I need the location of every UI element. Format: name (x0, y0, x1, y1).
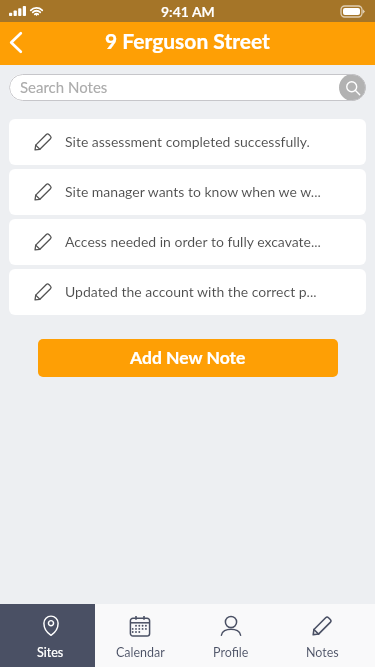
staticText: Access needed in order to fully excavate… (65, 233, 321, 250)
staticText: Profile (213, 645, 249, 660)
button[interactable]: Profile (186, 604, 276, 667)
button[interactable]: Search (339, 74, 366, 101)
button[interactable]: Access needed in order to fully excavate… (9, 219, 366, 265)
staticText: Calendar (116, 645, 165, 660)
staticText: Site manager wants to know when we w... (65, 183, 321, 200)
button[interactable]: Back (0, 22, 36, 65)
button[interactable]: Add New Note (38, 339, 338, 377)
button[interactable]: Sites (0, 604, 101, 667)
button[interactable]: Site manager wants to know when we w... (9, 169, 366, 215)
button[interactable]: Search Notes (9, 74, 366, 101)
button[interactable]: Site assessment completed successfully. (9, 119, 366, 165)
button[interactable]: Updated the account with the correct p..… (9, 269, 366, 315)
staticText: 9:41 AM (161, 3, 215, 20)
button[interactable]: Notes (277, 604, 367, 667)
staticText: Add New Note (130, 347, 246, 368)
staticText: Site assessment completed successfully. (65, 133, 310, 150)
staticText: Updated the account with the correct p..… (65, 283, 317, 300)
staticText: Search Notes (20, 78, 108, 96)
staticText: Notes (306, 645, 339, 660)
staticText: Sites (37, 645, 64, 660)
staticText: 9 Ferguson Street (105, 28, 270, 53)
button[interactable]: Calendar (95, 604, 185, 667)
